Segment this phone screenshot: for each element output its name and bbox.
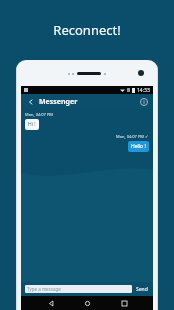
button[interactable]: Back <box>44 296 58 310</box>
button[interactable]: Type a message <box>25 285 132 293</box>
staticText: Mon, 04:07 PM <box>25 112 53 117</box>
staticText: Reconnect! <box>53 21 121 39</box>
staticText: 14:33 <box>137 87 150 94</box>
button[interactable]: Home <box>80 296 94 310</box>
staticText: Send <box>136 286 148 293</box>
staticText: Messenger <box>39 97 78 107</box>
staticText: Hello ! <box>131 143 146 150</box>
button[interactable]: Recents <box>117 296 131 310</box>
staticText: Type a message <box>27 286 61 292</box>
button[interactable]: Back <box>25 96 36 107</box>
staticText: Mon, 04:07 PM ✓ <box>116 134 149 139</box>
button[interactable]: Info <box>138 96 149 107</box>
staticText: Hi ! <box>28 121 36 128</box>
button[interactable]: Send <box>135 284 149 295</box>
